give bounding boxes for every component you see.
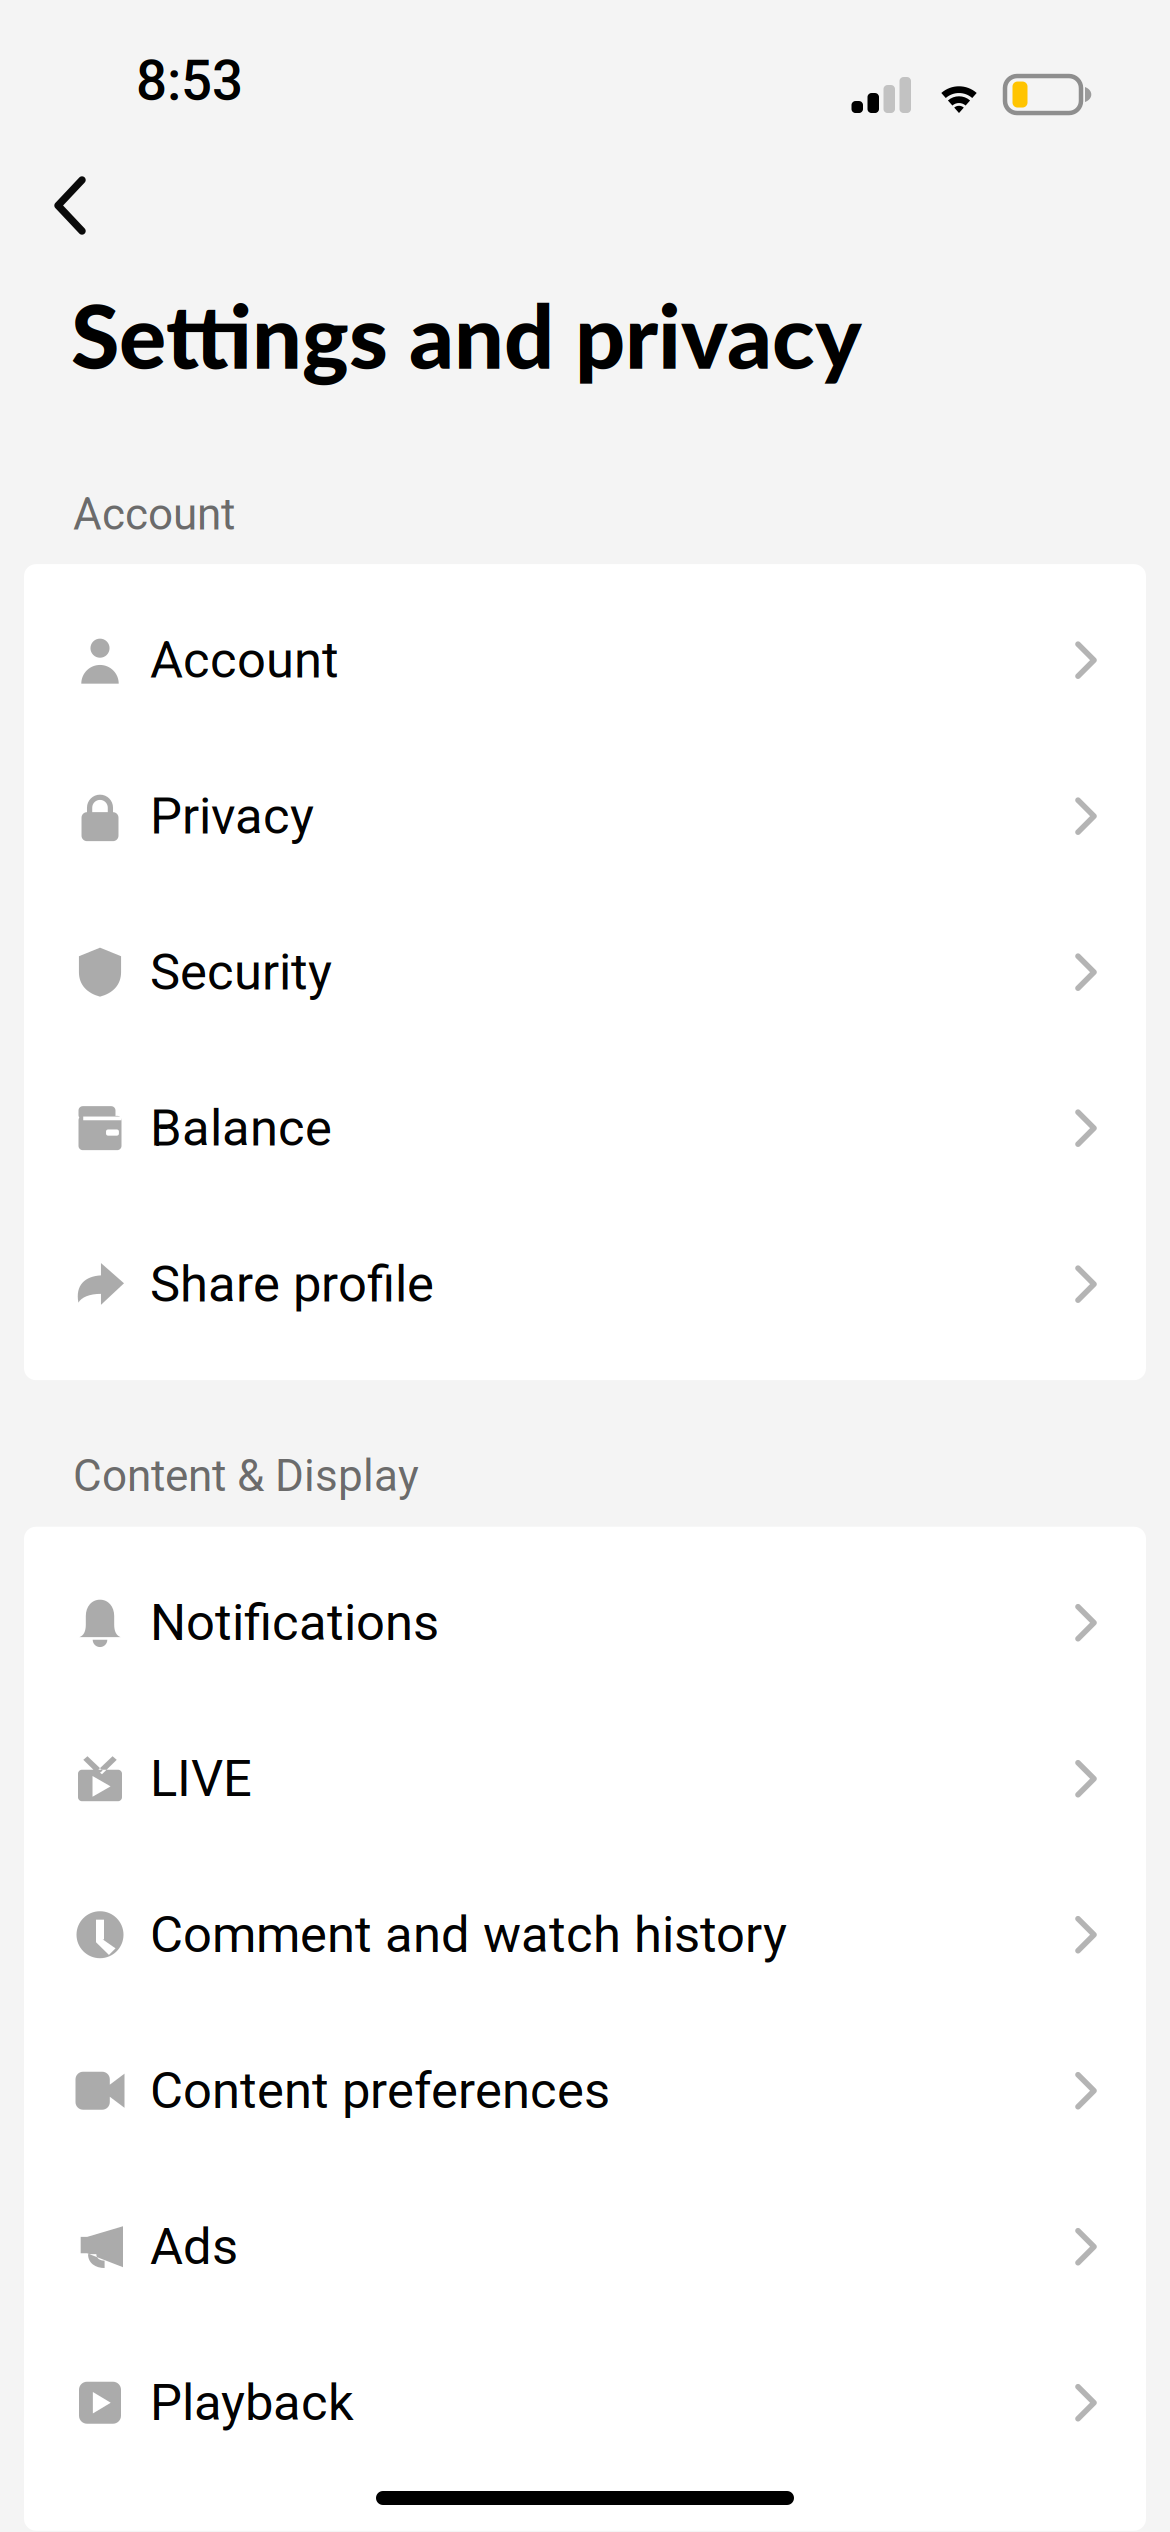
- staticText: Comment and watch history: [150, 1905, 787, 1964]
- staticText: LIVE: [150, 1749, 252, 1808]
- button[interactable]: Ads: [24, 2169, 1146, 2325]
- staticText: Account: [73, 489, 235, 540]
- staticText: Share profile: [150, 1254, 434, 1314]
- staticText: Security: [150, 942, 332, 1002]
- button[interactable]: Content preferences: [24, 2013, 1146, 2169]
- staticText: Balance: [150, 1098, 332, 1158]
- staticText: Playback: [150, 2373, 354, 2432]
- staticText: Settings and privacy: [71, 282, 862, 388]
- button[interactable]: Notifications: [24, 1545, 1146, 1701]
- button[interactable]: Security: [24, 894, 1146, 1050]
- staticText: 8:53: [136, 49, 243, 113]
- staticText: Content preferences: [150, 2061, 610, 2120]
- button[interactable]: Playback: [24, 2325, 1146, 2481]
- staticText: Account: [150, 630, 339, 690]
- button[interactable]: Back: [0, 146, 122, 282]
- staticText: Ads: [150, 2217, 238, 2276]
- button[interactable]: Balance: [24, 1050, 1146, 1206]
- button[interactable]: Account: [24, 582, 1146, 738]
- staticText: Notifications: [150, 1593, 439, 1652]
- button[interactable]: LIVE: [24, 1701, 1146, 1857]
- button[interactable]: Privacy: [24, 738, 1146, 894]
- staticText: Content & Display: [73, 1450, 419, 1502]
- button[interactable]: Share profile: [24, 1206, 1146, 1362]
- button[interactable]: Comment and watch history: [24, 1857, 1146, 2013]
- staticText: Privacy: [150, 786, 314, 846]
